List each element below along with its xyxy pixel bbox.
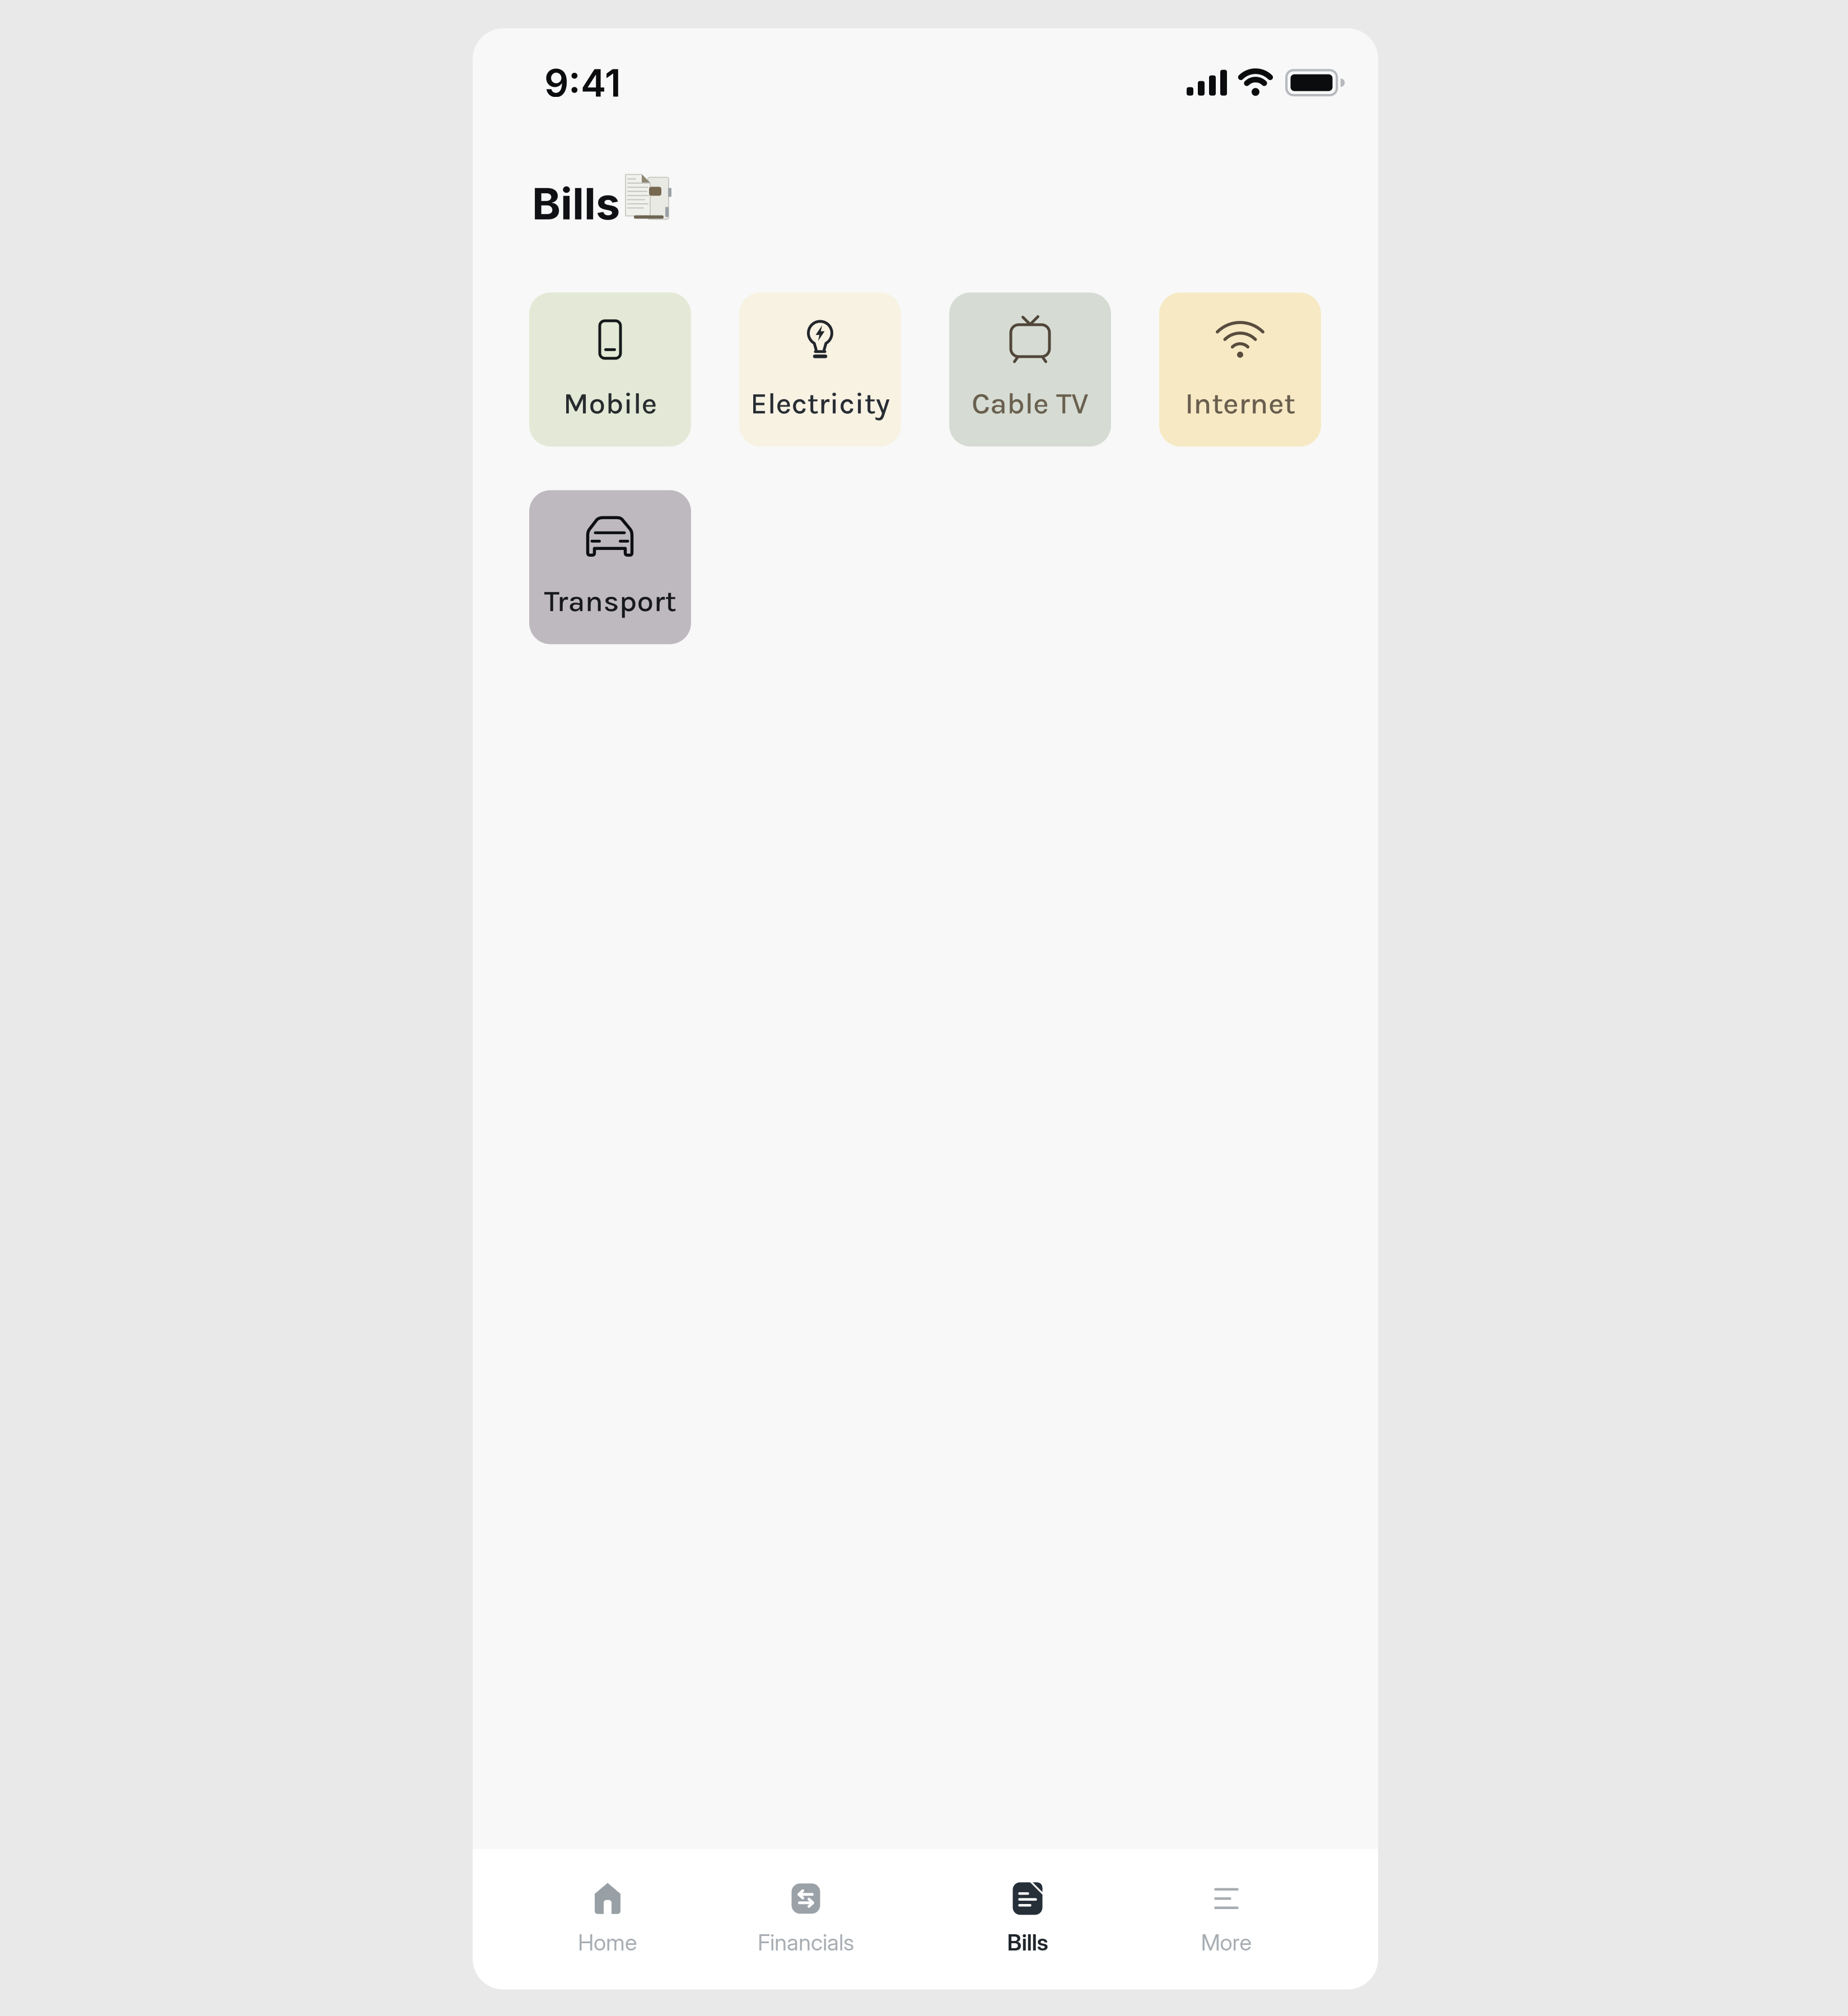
staticText: More (1201, 1929, 1252, 1956)
button[interactable]: Transport (529, 490, 691, 644)
staticText: Bills (532, 177, 620, 230)
button[interactable]: Cable TV (949, 292, 1111, 446)
button[interactable]: More (1123, 1882, 1329, 1956)
staticText: Internet (1185, 386, 1295, 421)
button[interactable]: Electricity (739, 292, 901, 446)
staticText: Electricity (750, 386, 890, 421)
staticText: Financials (758, 1929, 854, 1956)
button[interactable]: Bills (925, 1882, 1131, 1956)
button[interactable]: Financials (703, 1882, 909, 1956)
staticText: Cable TV (972, 386, 1089, 421)
staticText: Transport (544, 584, 676, 619)
staticText: Mobile (563, 386, 657, 421)
button[interactable]: Mobile (529, 292, 691, 446)
staticText: Bills (1007, 1929, 1048, 1956)
staticText: Home (578, 1929, 637, 1956)
button[interactable]: Internet (1159, 292, 1321, 446)
staticText: 9:41 (544, 60, 621, 106)
button[interactable]: Home (505, 1882, 711, 1956)
